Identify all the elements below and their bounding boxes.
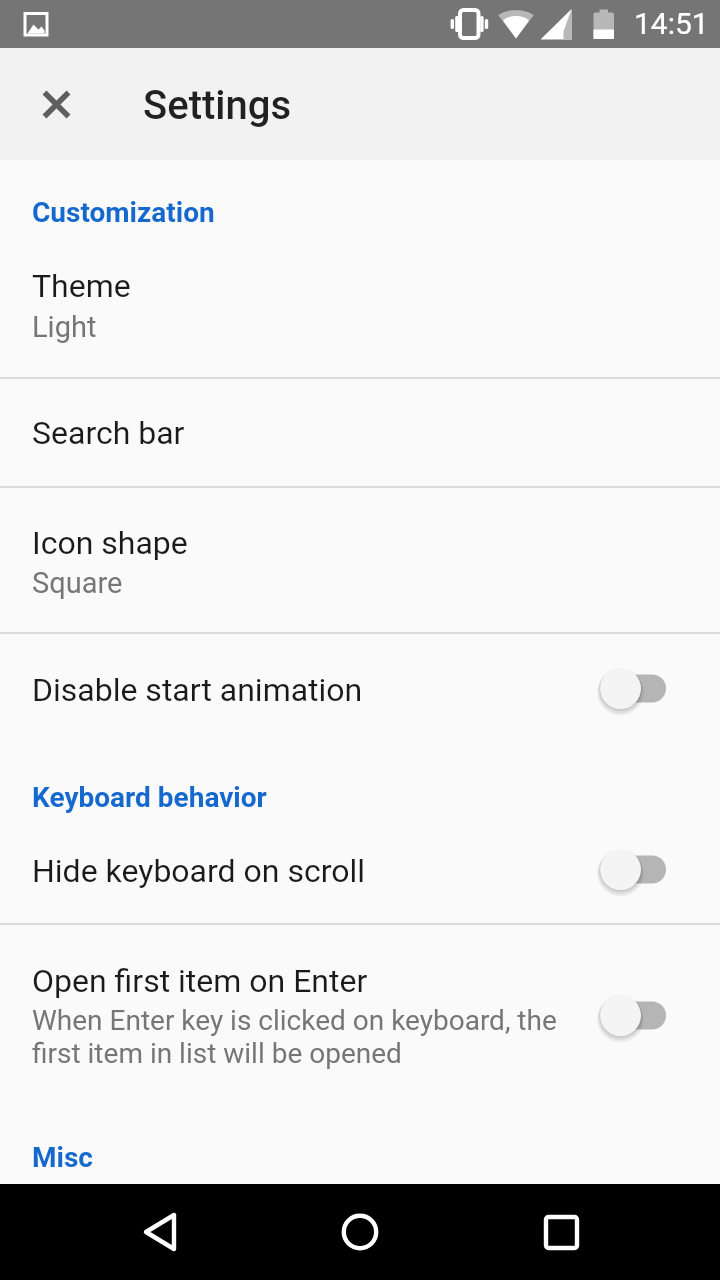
button[interactable]: Theme — [0, 250, 720, 377]
staticText: Search bar — [32, 414, 185, 452]
button[interactable]: Hide keyboard on scroll — [0, 823, 720, 923]
staticText: Disable start animation — [32, 671, 363, 709]
staticText: Open first item on Enter — [32, 962, 368, 1000]
button[interactable]: Toggle switch — [588, 981, 680, 1051]
button[interactable]: Home — [312, 1184, 408, 1280]
staticText: Icon shape — [32, 524, 188, 562]
staticText: Settings — [143, 82, 292, 129]
button[interactable]: Disable start animation — [0, 634, 720, 739]
staticText: Misc — [32, 1141, 93, 1174]
staticText: Hide keyboard on scroll — [32, 852, 365, 890]
staticText: Light — [32, 310, 97, 344]
staticText: Customization — [32, 196, 215, 229]
button[interactable]: Back — [112, 1184, 208, 1280]
button[interactable]: Toggle switch — [588, 654, 680, 724]
button[interactable]: Notification — [12, 0, 60, 48]
staticText: Keyboard behavior — [32, 781, 267, 814]
button[interactable]: Icon shape — [0, 488, 720, 632]
staticText: Square — [32, 566, 123, 600]
staticText: 14:51 — [634, 6, 709, 41]
button[interactable]: Open first item on Enter — [0, 925, 720, 1065]
staticText: Theme — [32, 267, 131, 305]
button[interactable]: Search bar — [0, 379, 720, 486]
button[interactable]: Toggle switch — [588, 835, 680, 905]
button[interactable]: Close — [22, 70, 90, 138]
button[interactable]: Recents — [512, 1184, 608, 1280]
staticText: When Enter key is clicked on keyboard, t… — [32, 1004, 562, 1070]
